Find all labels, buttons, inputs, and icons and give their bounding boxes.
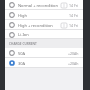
staticText: +20Ah (68, 61, 79, 66)
staticText: 14 Fri (69, 23, 79, 28)
staticText: 30A (18, 61, 68, 66)
staticText: High + recondition (18, 23, 61, 28)
button[interactable]: Li-Ion (5, 30, 83, 39)
button[interactable]: 30A (5, 58, 83, 68)
button[interactable]: 50A (5, 48, 83, 58)
staticText: 14 Fri (69, 13, 79, 18)
staticText: Li-Ion (18, 32, 79, 37)
button[interactable]: High + recondition (5, 20, 83, 30)
staticText: 50A (18, 51, 68, 56)
staticText: High (18, 13, 69, 18)
staticText: Normal + recondition (18, 3, 61, 8)
button[interactable]: Normal + recondition (5, 0, 83, 10)
button[interactable]: High (5, 10, 83, 20)
staticText: +20Ah (68, 51, 79, 56)
staticText: CHARGE CURRENT (9, 42, 37, 46)
staticText: 14 Fri (69, 3, 79, 8)
